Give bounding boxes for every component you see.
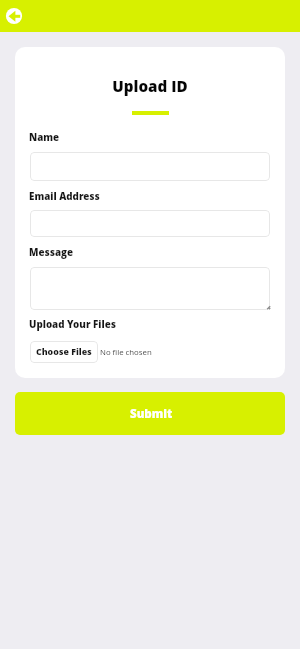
staticText: Email Address: [29, 190, 100, 203]
button[interactable]: Back: [5, 7, 23, 25]
button[interactable]: Submit: [15, 392, 285, 435]
staticText: Upload Your Files: [29, 318, 116, 331]
staticText: No file chosen: [100, 347, 152, 358]
button[interactable]: [30, 152, 270, 181]
button[interactable]: [30, 210, 270, 237]
button[interactable]: Choose Files: [30, 341, 98, 363]
staticText: Upload ID: [15, 76, 285, 97]
staticText: Choose Files: [36, 346, 92, 358]
staticText: Submit: [130, 406, 173, 422]
staticText: Message: [29, 246, 74, 259]
button[interactable]: [30, 267, 270, 310]
staticText: Name: [29, 131, 60, 144]
